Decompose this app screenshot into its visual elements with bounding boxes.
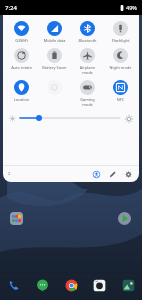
staticText: Gaming mode: [71, 97, 104, 107]
button[interactable]: User: [91, 169, 102, 180]
staticText: NFC: [104, 97, 137, 102]
button[interactable]: Battery Saver: [38, 47, 71, 71]
staticText: Battery Saver: [38, 65, 71, 70]
button[interactable]: Messages: [34, 277, 51, 294]
staticText: 49%: [126, 4, 137, 11]
button[interactable]: Mobile data: [38, 20, 71, 44]
staticText: 7:24: [5, 4, 17, 12]
staticText: Flashlight: [104, 38, 137, 43]
staticText: Location: [5, 97, 38, 102]
button[interactable]: Chrome: [63, 277, 80, 294]
button[interactable]: Photos: [120, 277, 137, 294]
button[interactable]: Gaming mode: [71, 79, 104, 108]
button[interactable]: Bluetooth: [71, 20, 104, 44]
staticText: Mobile data: [38, 38, 71, 43]
button[interactable]: Tile: [38, 79, 71, 103]
button[interactable]: Play Store: [118, 212, 131, 225]
staticText: G3WiFi: [5, 38, 38, 43]
button[interactable]: Edit: [107, 169, 118, 180]
button[interactable]: G3WiFi: [5, 20, 38, 44]
button[interactable]: Auto brightness: [124, 114, 133, 123]
button[interactable]: NFC: [104, 79, 137, 103]
button[interactable]: Camera: [91, 277, 108, 294]
staticText: Auto rotate: [5, 65, 38, 70]
other: Low brightness: [9, 115, 16, 122]
button[interactable]: Phone: [5, 277, 22, 294]
button[interactable]: Location: [5, 79, 38, 103]
staticText: Airplane mode: [71, 65, 104, 75]
button[interactable]: Auto rotate: [5, 47, 38, 71]
button[interactable]: Airplane mode: [71, 47, 104, 76]
button[interactable]: Brightness slider: [20, 113, 120, 123]
button[interactable]: Night mode: [104, 47, 137, 71]
button[interactable]: Google folder: [10, 212, 23, 225]
staticText: 2: [8, 171, 11, 177]
button[interactable]: Flashlight: [104, 20, 137, 44]
staticText: Bluetooth: [71, 38, 104, 43]
button[interactable]: Settings: [123, 169, 134, 180]
staticText: Night mode: [104, 65, 137, 70]
